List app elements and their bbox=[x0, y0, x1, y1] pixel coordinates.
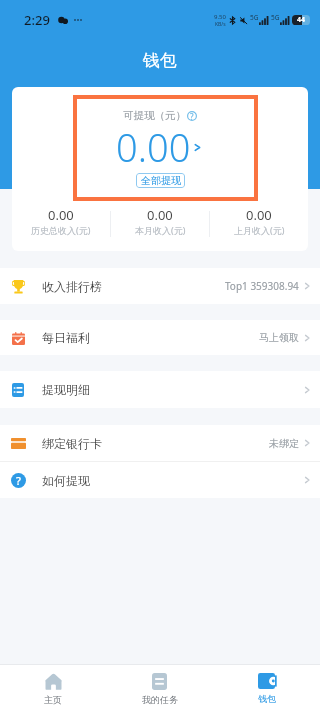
staticText: 可提现（元） bbox=[123, 109, 186, 122]
button[interactable]: 绑定银行卡 bbox=[0, 425, 320, 461]
staticText: 如何提现 bbox=[42, 473, 90, 488]
staticText: 44 bbox=[297, 15, 306, 25]
staticText: 本月收入(元) bbox=[135, 224, 186, 236]
staticText: 0.00 bbox=[48, 206, 74, 224]
staticText: 提现明细 bbox=[42, 382, 90, 397]
button[interactable]: 主页 bbox=[0, 665, 106, 711]
staticText: 钱包 bbox=[258, 693, 276, 704]
staticText: 未绑定 bbox=[269, 437, 299, 450]
staticText: 主页 bbox=[44, 694, 62, 705]
staticText: 5G bbox=[250, 13, 259, 22]
staticText: 每日福利 bbox=[42, 330, 90, 345]
staticText: Top1 359308.94 bbox=[225, 279, 299, 293]
staticText: 2:29 bbox=[24, 11, 50, 29]
staticText: 上月收入(元) bbox=[234, 224, 285, 236]
staticText: 我的任务 bbox=[142, 694, 178, 705]
button[interactable]: 每日福利 bbox=[0, 320, 320, 355]
staticText: ? bbox=[190, 111, 194, 121]
button[interactable]: ? bbox=[0, 462, 320, 498]
staticText: 收入排行榜 bbox=[42, 279, 102, 294]
staticText: 9.50 bbox=[214, 13, 226, 21]
staticText: 全部提现 bbox=[141, 174, 181, 187]
staticText: KB/s bbox=[215, 21, 226, 28]
staticText: 马上领取 bbox=[259, 331, 299, 344]
staticText: 0.00 bbox=[246, 206, 272, 224]
staticText: 历史总收入(元) bbox=[31, 224, 91, 236]
button[interactable]: 全部提现 bbox=[136, 173, 185, 188]
staticText: 5G bbox=[271, 13, 280, 22]
staticText: 绑定银行卡 bbox=[42, 436, 102, 451]
button[interactable]: 钱包 bbox=[213, 665, 320, 711]
button[interactable]: 收入排行榜 bbox=[0, 268, 320, 304]
button[interactable]: 我的任务 bbox=[106, 665, 213, 711]
button[interactable]: 提现明细 bbox=[0, 371, 320, 408]
staticText: 0.00 bbox=[116, 121, 191, 173]
staticText: ? bbox=[16, 473, 21, 488]
staticText: 钱包 bbox=[143, 50, 177, 71]
staticText: 0.00 bbox=[147, 206, 173, 224]
